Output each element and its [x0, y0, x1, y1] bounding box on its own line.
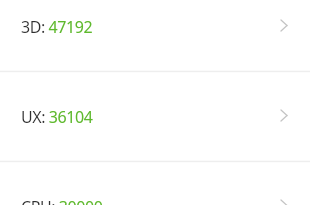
other: Open details — [281, 110, 287, 121]
staticText: CPU: 30000 — [21, 196, 103, 205]
other: Open details — [281, 20, 287, 31]
button[interactable]: 3D: 47192 — [0, 0, 310, 70]
button[interactable]: CPU: 30000 — [0, 160, 310, 205]
button[interactable]: UX: 36104 — [0, 70, 310, 160]
staticText: UX: 36104 — [21, 106, 93, 128]
other: Open details — [281, 200, 287, 205]
staticText: 3D: 47192 — [21, 16, 93, 38]
